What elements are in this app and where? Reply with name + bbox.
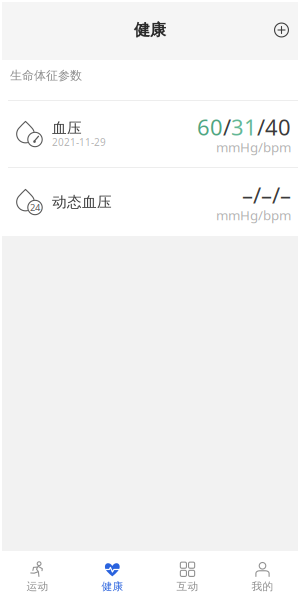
staticText: 我的 <box>251 580 273 593</box>
staticText: mmHg/bpm <box>216 206 291 224</box>
staticText: 健康 <box>134 20 166 40</box>
button[interactable]: 运动 <box>0 551 75 600</box>
button[interactable]: 健康 <box>75 551 150 600</box>
button[interactable]: 我的 <box>225 551 300 600</box>
staticText: 60 <box>197 112 223 142</box>
staticText: 血压 <box>52 119 82 137</box>
staticText: 动态血压 <box>52 193 112 211</box>
staticText: 生命体征参数 <box>10 68 82 83</box>
button[interactable]: Add <box>274 22 300 37</box>
staticText: 健康 <box>101 580 123 593</box>
staticText: 40 <box>265 112 291 142</box>
staticText: 31 <box>231 112 257 142</box>
button[interactable]: 血压 <box>0 101 300 167</box>
staticText: / <box>223 112 231 142</box>
staticText: 2021-11-29 <box>52 135 106 149</box>
button[interactable]: 24 <box>0 168 300 236</box>
staticText: / <box>257 112 265 142</box>
staticText: mmHg/bpm <box>216 138 291 156</box>
staticText: 24 <box>30 201 40 214</box>
button[interactable]: 互动 <box>150 551 225 600</box>
staticText: 运动 <box>26 580 48 593</box>
staticText: –/–/– <box>242 180 291 210</box>
staticText: 互动 <box>176 580 198 593</box>
